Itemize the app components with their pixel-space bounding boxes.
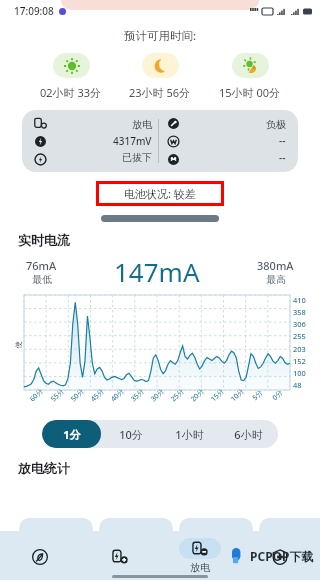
staticText: 306	[293, 319, 306, 329]
staticText: 20分	[189, 386, 207, 404]
staticText: 55分	[49, 386, 67, 404]
staticText: 17:09:08	[14, 4, 54, 18]
staticText: 35分	[129, 386, 147, 404]
staticText: 1小时	[175, 427, 204, 442]
staticText: 放电	[190, 561, 210, 574]
staticText: 255	[293, 331, 306, 341]
staticText: 02小时 33分	[40, 85, 102, 100]
button[interactable]: 放电	[22, 110, 298, 172]
staticText: 1分	[63, 427, 81, 442]
staticText: 10分	[119, 427, 143, 442]
staticText: 最低	[32, 273, 52, 286]
button[interactable]: 放电	[160, 532, 240, 580]
staticText: 48	[293, 380, 302, 390]
staticText: 45分	[89, 386, 107, 404]
staticText: --	[279, 151, 286, 165]
staticText: 负极	[266, 118, 286, 131]
staticText: 最高	[266, 273, 286, 286]
button[interactable]: 充电	[80, 532, 160, 580]
staticText: 147mA	[114, 254, 200, 289]
staticText: 6小时	[234, 427, 263, 442]
staticText: 40分	[109, 386, 127, 404]
button[interactable]: 10分	[101, 420, 160, 448]
staticText: 76mA	[26, 258, 57, 273]
button[interactable]: 1小时	[160, 420, 219, 448]
staticText: 152	[293, 356, 306, 366]
staticText: 15小时 00分	[219, 85, 281, 100]
staticText: 30分	[149, 386, 167, 404]
staticText: 预计可用时间:	[124, 28, 197, 44]
staticText: 25分	[169, 386, 187, 404]
button[interactable]: 电池状况: 较差	[99, 184, 221, 203]
staticText: 203	[293, 344, 306, 354]
staticText: 电池状况: 较差	[124, 186, 196, 201]
staticText: 380mA	[257, 258, 294, 273]
staticText: 358	[293, 307, 306, 317]
button[interactable]: 6小时	[219, 420, 278, 448]
staticText: 4317mV	[113, 134, 152, 148]
staticText: --	[279, 134, 286, 148]
staticText: 放电	[132, 118, 152, 131]
staticText: 15分	[209, 386, 227, 404]
staticText: 410	[293, 295, 306, 305]
staticText: PCPOP下载	[250, 548, 314, 564]
staticText: 50分	[69, 386, 87, 404]
button[interactable]: 健康	[240, 532, 320, 580]
staticText: 10分	[229, 386, 247, 404]
button[interactable]: 1分	[42, 420, 101, 448]
button[interactable]: 概览	[0, 532, 80, 580]
staticText: 已拔下	[122, 151, 152, 164]
staticText: 100	[293, 368, 306, 378]
staticText: 60分	[28, 386, 46, 404]
staticText: 5分	[250, 387, 266, 403]
staticText: 放电统计	[18, 460, 70, 476]
staticText: 23小时 56分	[129, 85, 191, 100]
staticText: 实时电流	[18, 232, 70, 248]
staticText: 使用量 (mA)	[13, 336, 22, 348]
staticText: 0分	[270, 387, 286, 403]
